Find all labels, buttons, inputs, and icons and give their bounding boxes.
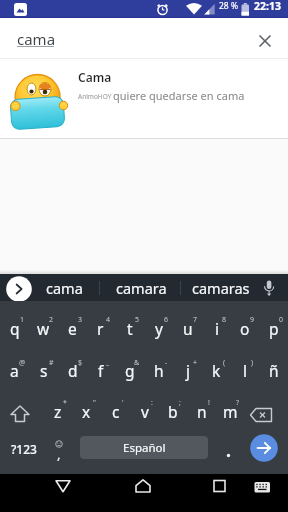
staticText: r <box>97 318 104 339</box>
button[interactable]: k <box>202 349 231 391</box>
button[interactable] <box>0 393 43 435</box>
staticText: 2 <box>49 315 54 325</box>
button[interactable] <box>214 431 244 467</box>
button[interactable]: v <box>130 390 159 432</box>
button[interactable]: e <box>58 307 87 349</box>
button[interactable]: ?123 <box>2 431 46 467</box>
button[interactable]: Cama <box>0 59 288 139</box>
staticText: o <box>240 318 250 339</box>
staticText: 3 <box>78 315 83 325</box>
staticText: a <box>10 360 19 381</box>
button[interactable]: j <box>173 349 202 391</box>
staticText: d <box>68 360 78 381</box>
button[interactable]: z <box>43 390 72 432</box>
button[interactable]: u <box>173 307 202 349</box>
button[interactable]: p <box>259 307 288 349</box>
staticText: h <box>154 360 164 381</box>
button[interactable] <box>123 474 163 512</box>
staticText: 4 <box>106 315 111 325</box>
staticText: 28 % <box>219 0 238 12</box>
staticText: x <box>82 401 91 422</box>
button[interactable]: , <box>46 429 72 469</box>
staticText: f <box>98 360 104 381</box>
button[interactable]: h <box>144 349 173 391</box>
staticText: ñ <box>269 360 279 381</box>
staticText: g <box>125 360 135 381</box>
button[interactable]: r <box>86 307 115 349</box>
button[interactable] <box>43 474 83 512</box>
button[interactable]: y <box>144 307 173 349</box>
button[interactable]: Español <box>80 436 208 459</box>
staticText: ! <box>208 398 210 408</box>
staticText: s <box>40 360 48 381</box>
staticText: n <box>197 401 207 422</box>
staticText: " <box>93 398 96 408</box>
button[interactable]: i <box>202 307 231 349</box>
staticText: k <box>212 360 221 381</box>
staticText: & <box>134 358 140 368</box>
staticText: m <box>223 401 238 422</box>
staticText: cama <box>17 29 56 49</box>
button[interactable]: cama <box>0 18 288 59</box>
staticText: 1 <box>20 315 25 325</box>
button[interactable]: o <box>230 307 259 349</box>
button[interactable]: x <box>72 390 101 432</box>
staticText: e <box>68 318 77 339</box>
staticText: ?123 <box>11 441 37 457</box>
button[interactable] <box>247 474 279 512</box>
staticText: _ <box>106 358 110 368</box>
button[interactable] <box>249 25 281 57</box>
button[interactable]: l <box>230 349 259 391</box>
button[interactable]: s <box>29 349 58 391</box>
button[interactable]: b <box>158 390 187 432</box>
staticText: # <box>49 358 54 368</box>
staticText: i <box>215 318 219 339</box>
button[interactable]: f <box>86 349 115 391</box>
staticText: c <box>112 401 120 422</box>
staticText: $ <box>78 358 83 368</box>
staticText: * <box>63 398 67 408</box>
staticText: v <box>141 401 149 422</box>
staticText: camara <box>116 278 167 298</box>
staticText: z <box>54 401 62 422</box>
staticText: 0 <box>279 315 284 325</box>
button[interactable]: n <box>187 390 216 432</box>
staticText: 8 <box>222 315 227 325</box>
button[interactable]: c <box>101 390 130 432</box>
button[interactable]: ñ <box>259 349 288 391</box>
staticText: - <box>165 358 168 368</box>
staticText: l <box>243 360 247 381</box>
staticText: Español <box>123 440 166 456</box>
button[interactable]: m <box>216 390 245 432</box>
button[interactable]: w <box>29 307 58 349</box>
button[interactable] <box>6 276 33 303</box>
button[interactable] <box>245 393 288 435</box>
staticText: ? <box>236 398 240 408</box>
button[interactable]: camaras <box>188 274 254 301</box>
button[interactable]: camara <box>108 274 174 301</box>
staticText: 6 <box>164 315 169 325</box>
button[interactable] <box>199 474 239 512</box>
staticText: 5 <box>135 315 140 325</box>
button[interactable] <box>250 434 278 462</box>
button[interactable]: d <box>58 349 87 391</box>
button[interactable] <box>256 275 282 301</box>
staticText: ) <box>251 358 254 368</box>
staticText: quiere quedarse en cama <box>113 88 245 103</box>
staticText: 7 <box>193 315 198 325</box>
staticText: 9 <box>250 315 255 325</box>
button[interactable]: a <box>0 349 29 391</box>
staticText: t <box>127 318 133 339</box>
button[interactable]: g <box>115 349 144 391</box>
staticText: q <box>10 318 20 339</box>
staticText: w <box>37 318 50 339</box>
staticText: camaras <box>192 278 250 298</box>
staticText: ' <box>122 398 124 408</box>
staticText: b <box>168 401 178 422</box>
staticText: ; <box>179 398 181 408</box>
staticText: 22:13 <box>254 0 281 13</box>
button[interactable]: t <box>115 307 144 349</box>
button[interactable]: cama <box>38 274 90 301</box>
staticText: + <box>193 358 198 368</box>
button[interactable]: q <box>0 307 29 349</box>
